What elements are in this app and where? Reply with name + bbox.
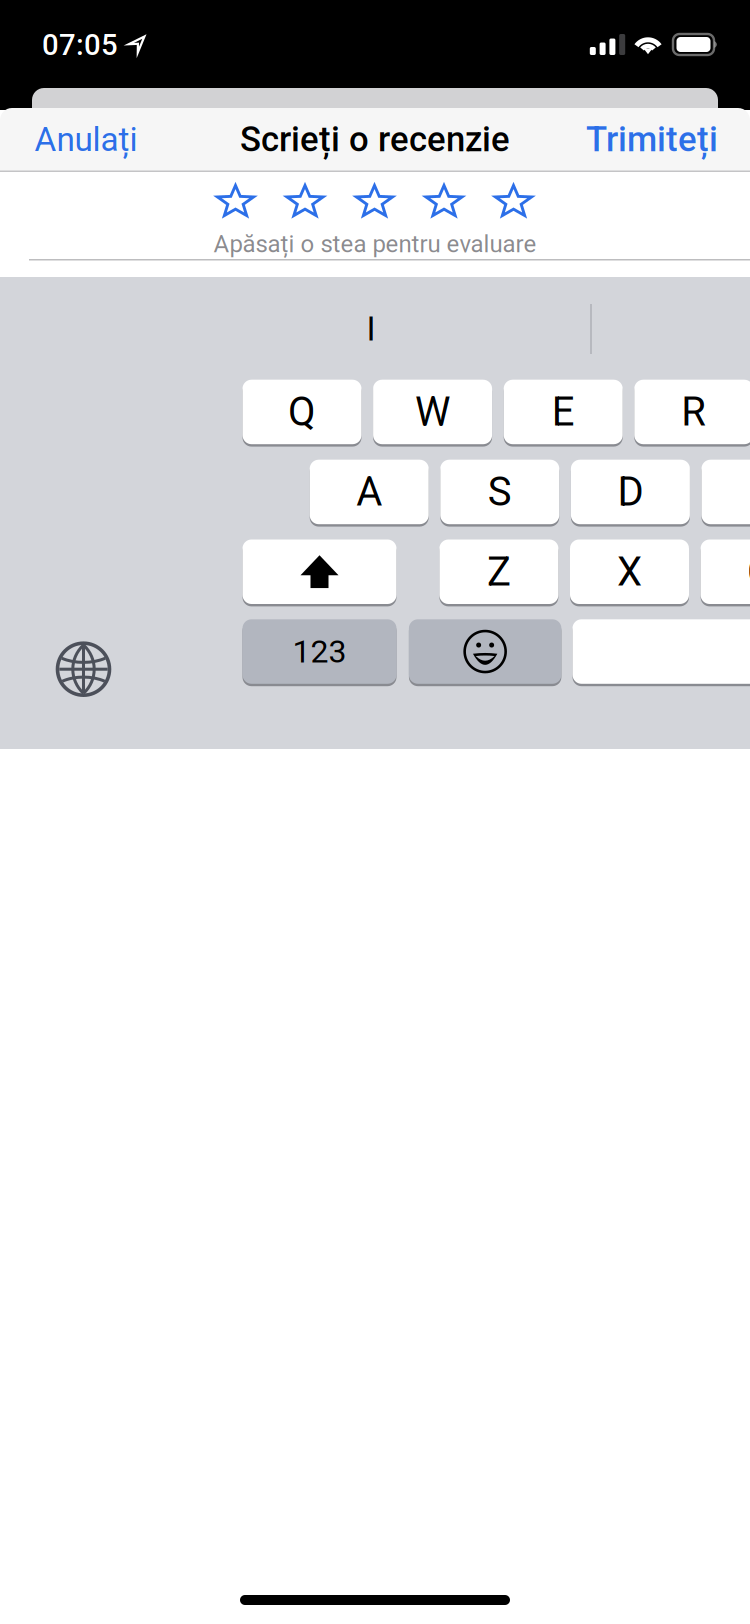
button[interactable]: E — [504, 378, 623, 446]
staticText: C — [747, 548, 750, 595]
button[interactable]: Rate 1 star — [216, 184, 255, 217]
button[interactable]: Z — [439, 538, 558, 605]
button[interactable]: Anulați — [16, 108, 156, 171]
button[interactable]: Rate 4 stars — [424, 184, 463, 217]
staticText: A — [356, 468, 382, 515]
button[interactable]: X — [570, 538, 689, 605]
button[interactable]: A — [310, 458, 429, 526]
button[interactable]: R — [634, 378, 750, 446]
button[interactable]: F — [701, 458, 750, 526]
staticText: Q — [288, 388, 316, 435]
button[interactable]: Q — [242, 378, 361, 446]
staticText: Anulați — [34, 120, 137, 159]
button[interactable] — [242, 538, 396, 605]
staticText: 123 — [292, 633, 346, 670]
staticText: E — [552, 388, 575, 435]
staticText: Z — [487, 548, 511, 595]
button[interactable] — [409, 618, 561, 685]
button[interactable]: C — [701, 538, 750, 605]
button[interactable]: I — [311, 307, 431, 351]
button[interactable]: D — [571, 458, 690, 526]
button[interactable]: Trimiteți — [569, 108, 735, 171]
button[interactable]: W — [373, 378, 492, 446]
button[interactable]: 123 — [242, 618, 396, 685]
button[interactable]: S — [440, 458, 559, 526]
staticText: Trimiteți — [586, 119, 718, 160]
button[interactable] — [572, 618, 750, 685]
button[interactable]: Rate 5 stars — [494, 184, 533, 217]
button[interactable]: Rate 3 stars — [355, 184, 394, 217]
staticText: I — [366, 309, 375, 349]
button[interactable]: Rate 2 stars — [285, 184, 324, 217]
staticText: Scrieți o recenzie — [240, 119, 510, 160]
staticText: Apăsați o stea pentru evaluare — [213, 230, 536, 258]
staticText: 07:05 — [42, 28, 118, 62]
staticText: S — [488, 468, 512, 515]
staticText: W — [415, 388, 450, 435]
staticText: R — [681, 388, 706, 435]
button[interactable]: Next keyboard — [57, 643, 110, 696]
staticText: D — [617, 468, 643, 515]
staticText: X — [617, 548, 642, 595]
